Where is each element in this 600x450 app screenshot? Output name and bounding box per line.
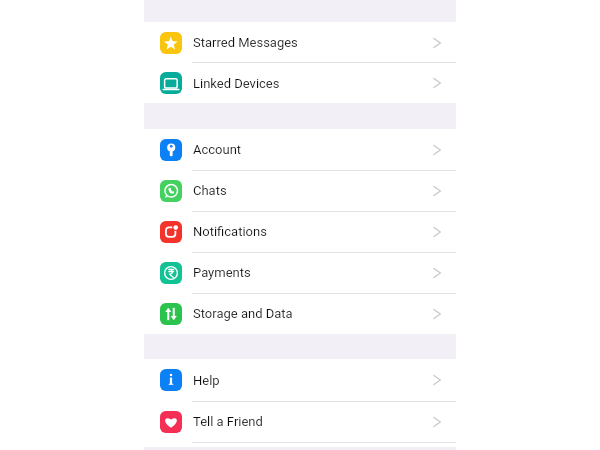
staticText: Help <box>193 373 220 388</box>
staticText: Payments <box>193 265 251 280</box>
button[interactable]: Help <box>144 359 456 401</box>
staticText: Starred Messages <box>193 35 298 50</box>
staticText: Storage and Data <box>193 306 293 321</box>
button[interactable]: Starred Messages <box>144 22 456 63</box>
button[interactable]: Linked Devices <box>144 63 456 103</box>
button[interactable]: Tell a Friend <box>144 401 456 442</box>
staticText: Account <box>193 142 242 157</box>
staticText: Chats <box>193 183 227 198</box>
staticText: Notifications <box>193 224 267 239</box>
button[interactable]: Payments <box>144 252 456 293</box>
button[interactable]: Storage and Data <box>144 293 456 334</box>
button[interactable]: Account <box>144 129 456 170</box>
button[interactable]: Notifications <box>144 211 456 252</box>
button[interactable]: Chats <box>144 170 456 211</box>
staticText: Linked Devices <box>193 76 280 91</box>
staticText: Tell a Friend <box>193 414 263 429</box>
